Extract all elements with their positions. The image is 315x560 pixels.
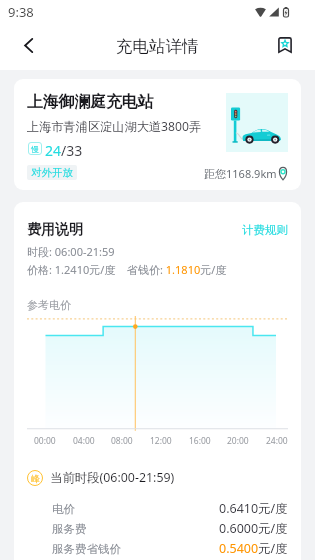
staticText: 16:00 — [189, 435, 211, 447]
staticText: 价格: 1.2410元/度 — [27, 262, 116, 277]
staticText: 08:00 — [111, 435, 133, 447]
staticText: 服务费省钱价 — [52, 542, 121, 556]
staticText: 费用说明 — [27, 221, 83, 239]
button[interactable]: Favorite — [269, 29, 301, 61]
staticText: 省钱价: 1.1810元/度 — [127, 262, 227, 277]
staticText: 当前时段(06:00-21:59) — [50, 469, 175, 486]
staticText: 电价 — [52, 502, 75, 516]
staticText: 0.6410元/度 — [219, 500, 288, 517]
staticText: 计费规则 — [242, 223, 288, 237]
button[interactable]: 计费规则 — [14, 223, 288, 237]
staticText: 慢 — [31, 144, 39, 154]
staticText: 参考电价 — [27, 298, 71, 312]
staticText: 0.5400元/度 — [219, 540, 288, 557]
staticText: 峰 — [31, 473, 40, 484]
staticText: 时段: 06:00-21:59 — [27, 244, 115, 259]
button[interactable]: 上海御澜庭充电站 — [14, 79, 301, 190]
staticText: 距您1168.9km — [204, 166, 277, 181]
staticText: 24:00 — [266, 435, 288, 447]
staticText: 上海市青浦区淀山湖大道3800弄 — [27, 118, 202, 135]
staticText: 对外开放 — [31, 166, 73, 179]
staticText: 服务费 — [52, 522, 87, 536]
staticText: 0.6000元/度 — [219, 520, 288, 537]
staticText: 充电站详情 — [116, 36, 199, 57]
staticText: 04:00 — [73, 435, 95, 447]
staticText: 12:00 — [150, 435, 172, 447]
staticText: 24/33 — [45, 141, 83, 160]
staticText: 00:00 — [34, 435, 56, 447]
button[interactable]: Back — [12, 29, 44, 61]
staticText: 20:00 — [227, 435, 249, 447]
staticText: 上海御澜庭充电站 — [27, 92, 154, 112]
staticText: 9:38 — [8, 3, 34, 21]
